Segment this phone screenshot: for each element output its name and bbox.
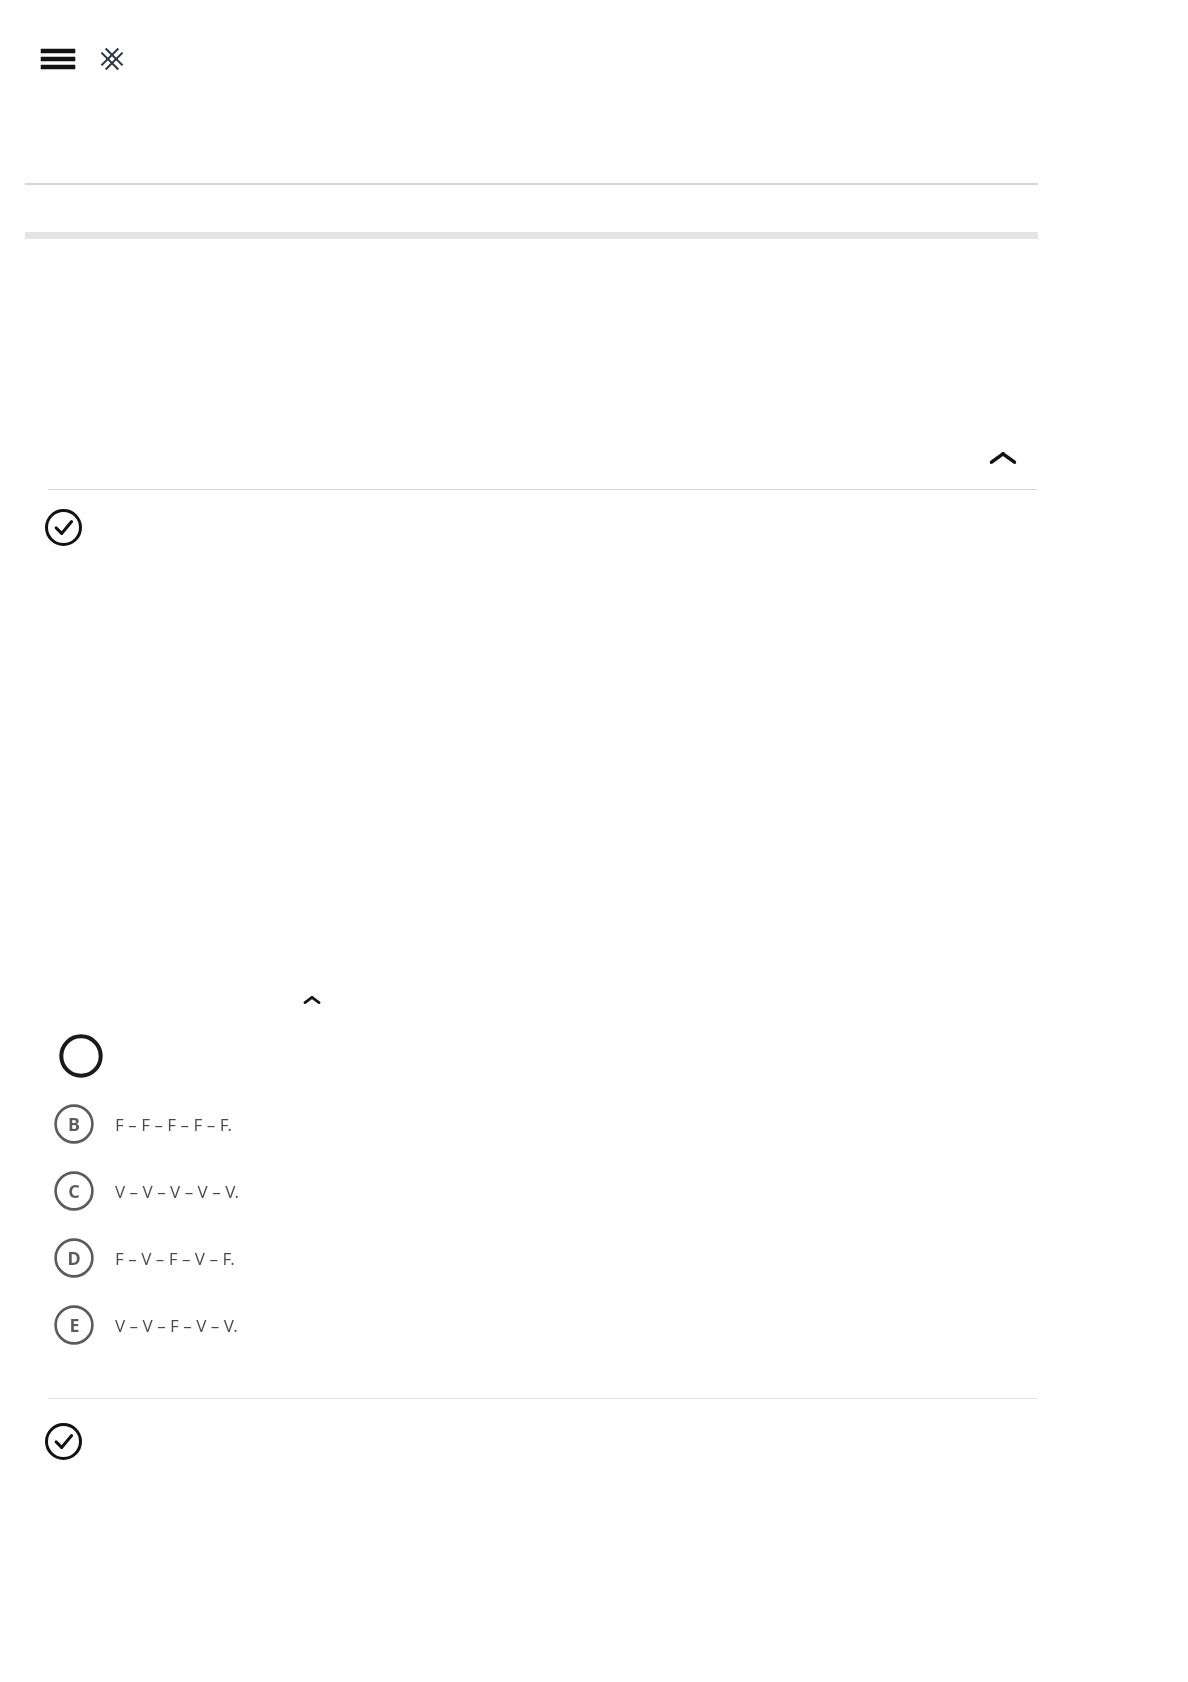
button[interactable]: C [50, 1163, 1188, 1219]
button[interactable]: D [50, 1230, 1188, 1286]
staticText: E [69, 1313, 80, 1338]
button[interactable]: Collapse [972, 428, 1034, 488]
button[interactable]: Collapse section [288, 976, 336, 1024]
button[interactable] [50, 1026, 1188, 1086]
button[interactable]: Answered correctly [40, 504, 86, 550]
staticText: F – F – F – F – F. [115, 1113, 233, 1136]
button[interactable]: E [50, 1297, 1188, 1353]
button[interactable]: Menu [30, 33, 86, 85]
button[interactable]: B [50, 1096, 1188, 1152]
button[interactable]: Answered correctly [40, 1418, 86, 1464]
staticText: D [67, 1246, 81, 1271]
staticText: B [68, 1112, 80, 1137]
staticText: V – V – V – V – V. [115, 1180, 240, 1203]
staticText: F – V – F – V – F. [115, 1247, 235, 1270]
button[interactable]: Close [86, 33, 138, 85]
staticText: C [68, 1179, 80, 1204]
staticText: V – V – F – V – V. [115, 1314, 238, 1337]
